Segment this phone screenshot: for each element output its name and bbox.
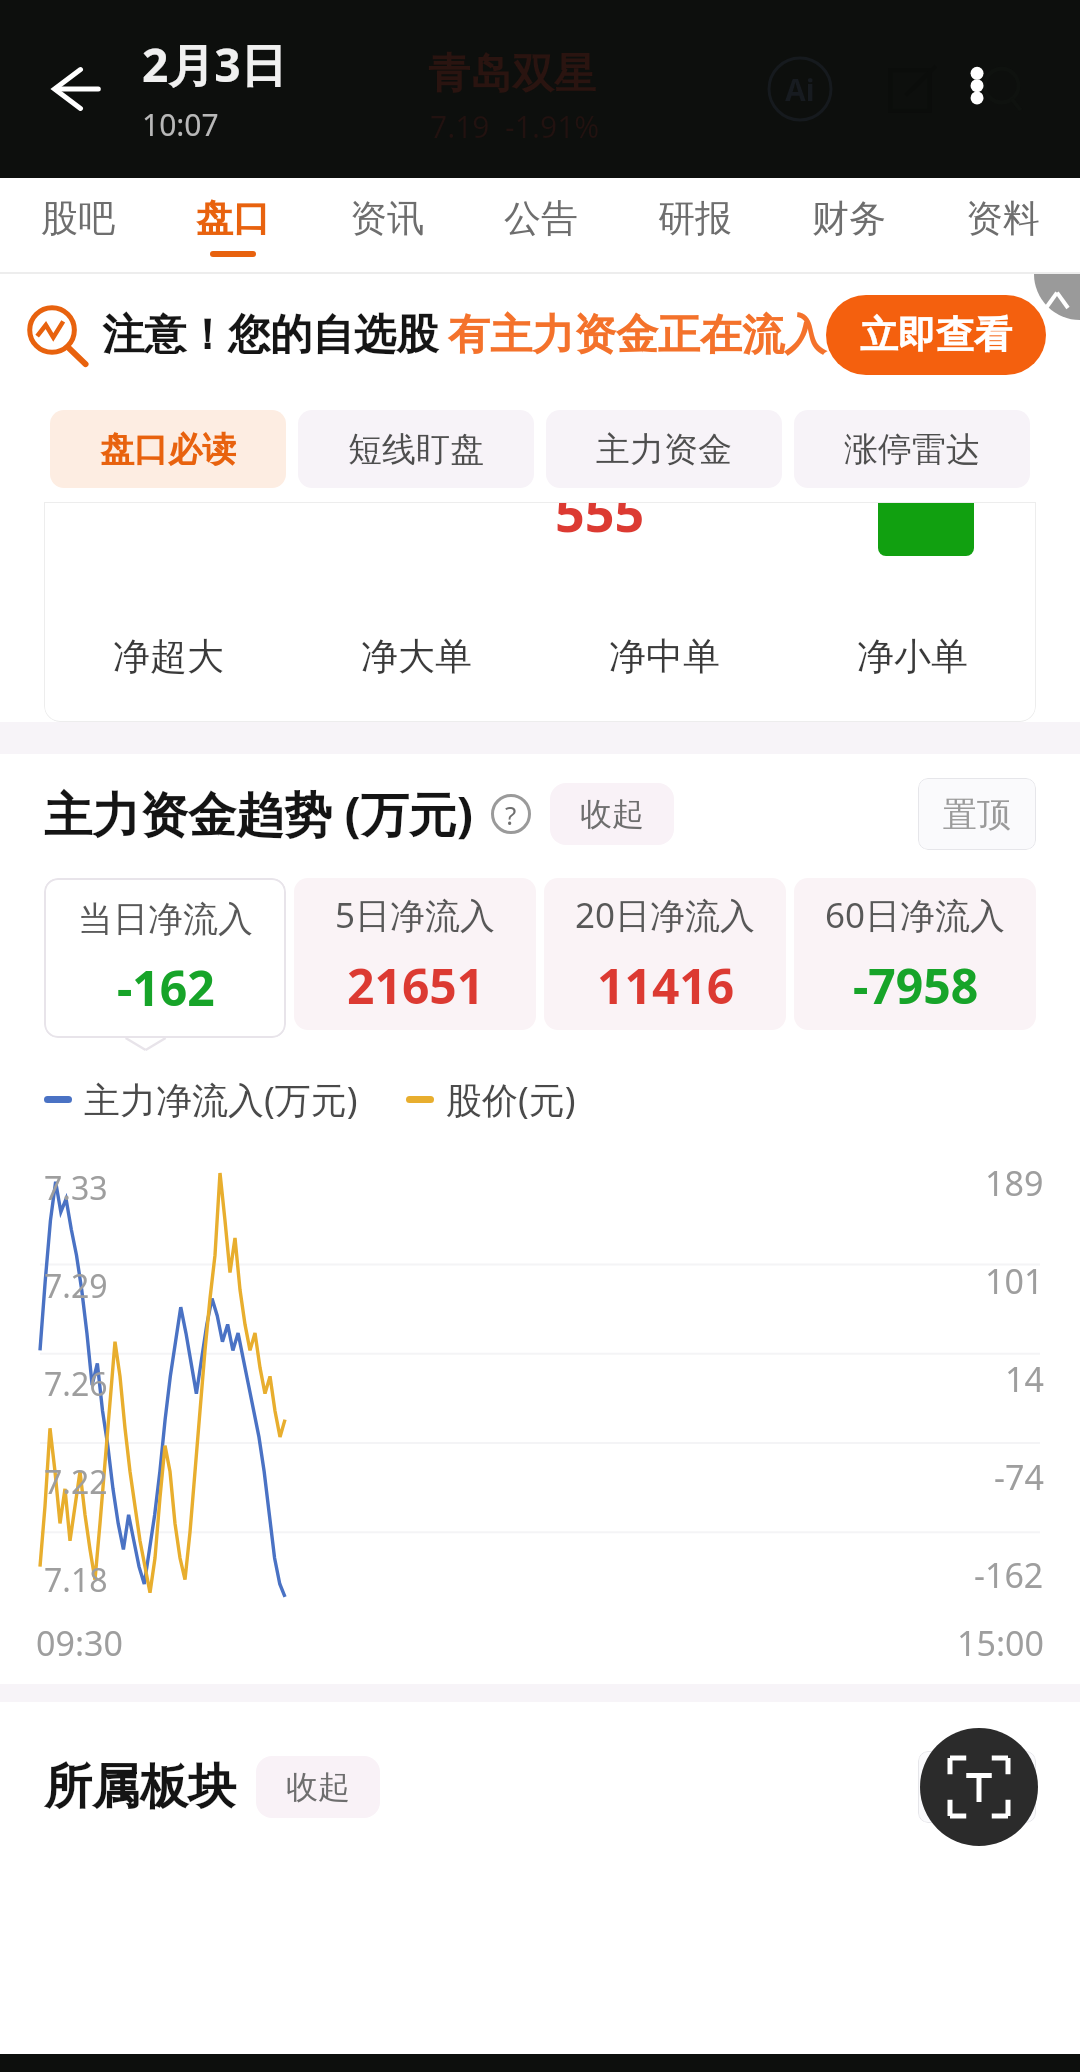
button[interactable]: 股吧	[0, 178, 155, 274]
button[interactable]: 20日净流入	[544, 878, 786, 1030]
staticText: 盘口必读	[100, 428, 236, 471]
staticText: -7958	[853, 953, 979, 1018]
button[interactable]: 短线盯盘	[298, 410, 534, 488]
staticText: 置顶	[943, 793, 1011, 836]
staticText: 2月3日	[142, 33, 287, 96]
staticText: 555	[555, 502, 645, 547]
button[interactable]: 涨停雷达	[794, 410, 1030, 488]
staticText: 所属板块	[44, 1757, 236, 1817]
button[interactable]: Close	[1034, 274, 1080, 320]
staticText: ?	[505, 797, 517, 832]
button[interactable]: Back	[26, 41, 122, 137]
staticText: 盘口	[196, 195, 270, 242]
staticText: 资讯	[350, 195, 424, 242]
staticText: 189	[985, 1160, 1044, 1206]
button[interactable]: 资料	[926, 178, 1080, 274]
staticText: 注意！您的自选股	[102, 309, 438, 362]
button[interactable]: More options	[944, 47, 1028, 131]
staticText: 有主力资金正在流入	[448, 309, 826, 362]
staticText: -74	[994, 1454, 1044, 1500]
button[interactable]: 5日净流入	[294, 878, 536, 1030]
staticText: 股吧	[41, 195, 115, 242]
staticText: 11416	[597, 953, 735, 1018]
staticText: 7.33	[44, 1166, 108, 1210]
staticText: 21651	[347, 953, 485, 1018]
button[interactable]: 主力资金	[546, 410, 782, 488]
staticText: 10:07	[142, 104, 219, 145]
button[interactable]: AI	[760, 49, 840, 129]
staticText: 置顶	[943, 1766, 1011, 1809]
staticText: 青岛双星	[428, 48, 596, 101]
staticText: 净超大	[113, 633, 224, 680]
staticText: 股价(元)	[446, 1075, 576, 1124]
button[interactable]: 盘口必读	[50, 410, 286, 488]
staticText: 主力资金趋势 (万元)	[44, 781, 474, 847]
staticText: 主力净流入(万元)	[84, 1075, 358, 1124]
staticText: 涨停雷达	[844, 428, 980, 471]
staticText: 研报	[658, 195, 732, 242]
staticText: 5日净流入	[335, 891, 496, 939]
staticText: 7.18	[44, 1558, 108, 1602]
staticText: 主力资金	[596, 428, 732, 471]
staticText: 7.19 -1.91%	[430, 106, 600, 147]
button[interactable]: 立即查看	[826, 295, 1046, 375]
staticText: -162	[117, 955, 215, 1020]
staticText: 公告	[504, 195, 578, 242]
staticText: 101	[985, 1258, 1044, 1304]
button[interactable]: 当日净流入	[44, 878, 286, 1038]
button[interactable]: 研报	[618, 178, 772, 274]
staticText: 财务	[812, 195, 886, 242]
staticText: -162	[974, 1552, 1044, 1598]
staticText: 09:30	[36, 1620, 123, 1666]
staticText: 60日净流入	[825, 891, 1006, 939]
staticText: 7.29	[44, 1264, 108, 1308]
staticText: 立即查看	[860, 311, 1012, 359]
button[interactable]: Scan	[920, 1728, 1038, 1846]
staticText: Ai	[785, 69, 815, 110]
button[interactable]: 置顶	[918, 778, 1036, 850]
staticText: 收起	[286, 1767, 350, 1807]
staticText: 当日净流入	[78, 897, 253, 941]
staticText: 20日净流入	[575, 891, 756, 939]
staticText: 资料	[966, 195, 1040, 242]
button[interactable]: 置顶	[918, 1751, 1036, 1823]
staticText: 净大单	[361, 633, 472, 680]
button[interactable]: 收起	[256, 1756, 380, 1818]
staticText: 7.26	[44, 1362, 108, 1406]
staticText: 15:00	[957, 1620, 1044, 1666]
staticText: 14	[1005, 1356, 1044, 1402]
staticText: 净小单	[857, 633, 968, 680]
button[interactable]: 60日净流入	[794, 878, 1036, 1030]
staticText: 7.22	[44, 1460, 108, 1504]
staticText: 净中单	[609, 633, 720, 680]
staticText: 短线盯盘	[348, 428, 484, 471]
button[interactable]: 盘口	[155, 178, 310, 274]
button[interactable]: 公告	[464, 178, 618, 274]
button[interactable]: 资讯	[310, 178, 464, 274]
button[interactable]: 收起	[550, 783, 674, 845]
button[interactable]: 财务	[772, 178, 926, 274]
staticText: 收起	[580, 794, 644, 834]
button[interactable]: Help	[488, 791, 534, 837]
